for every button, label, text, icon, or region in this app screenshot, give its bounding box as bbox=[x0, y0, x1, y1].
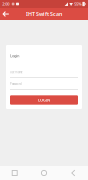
staticText: 2:00 bbox=[2, 1, 9, 7]
staticText: Username bbox=[10, 70, 23, 74]
button[interactable]: Home bbox=[29, 166, 59, 180]
staticText: IHT Swift Scan bbox=[26, 10, 62, 18]
staticText: Login bbox=[10, 53, 19, 58]
staticText: Password bbox=[10, 82, 22, 86]
staticText: LOGIN bbox=[38, 97, 50, 103]
button[interactable]: Recent apps bbox=[0, 166, 29, 180]
button[interactable]: LOGIN bbox=[10, 95, 78, 105]
button[interactable]: Back bbox=[59, 166, 88, 180]
staticText: 55% bbox=[74, 1, 81, 7]
button[interactable]: Back bbox=[0, 8, 12, 20]
